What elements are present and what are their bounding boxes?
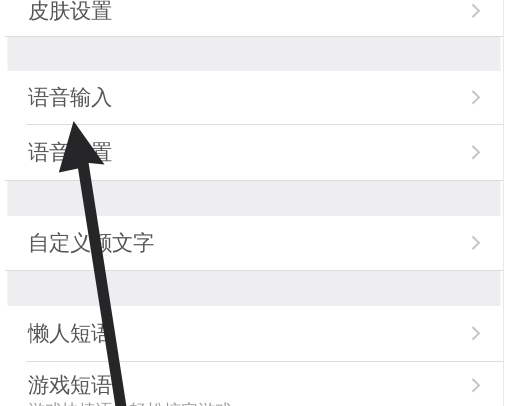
staticText: 游戏快捷语，轻松搞定游戏: [28, 400, 232, 406]
staticText: 皮肤设置: [28, 0, 112, 24]
staticText: 自定义颜文字: [28, 230, 154, 256]
staticText: 游戏短语: [28, 372, 112, 398]
button[interactable]: 游戏短语: [5, 362, 498, 406]
button[interactable]: 语音输入: [5, 71, 498, 124]
staticText: 语音设置: [28, 139, 112, 166]
button[interactable]: 懒人短语: [5, 306, 498, 361]
staticText: 语音输入: [28, 84, 112, 111]
button[interactable]: 皮肤设置: [5, 0, 498, 36]
button[interactable]: 语音设置: [5, 125, 498, 180]
staticText: 懒人短语: [28, 320, 112, 347]
button[interactable]: 自定义颜文字: [5, 216, 498, 270]
